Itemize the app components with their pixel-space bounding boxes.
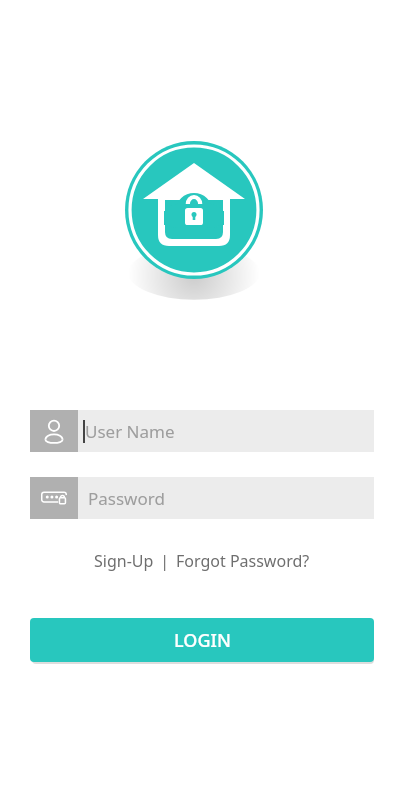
staticText: User Name <box>85 420 175 443</box>
staticText: Sign-Up <box>94 550 154 572</box>
button[interactable]: Password <box>30 477 374 519</box>
button[interactable]: User Name <box>30 410 374 452</box>
staticText: LOGIN <box>174 628 231 653</box>
button[interactable]: LOGIN <box>30 618 374 662</box>
button[interactable]: Sign-Up <box>92 546 156 576</box>
staticText: | <box>156 550 174 572</box>
staticText: Forgot Password? <box>176 550 310 572</box>
button[interactable]: Forgot Password? <box>174 546 312 576</box>
staticText: Password <box>88 487 165 510</box>
